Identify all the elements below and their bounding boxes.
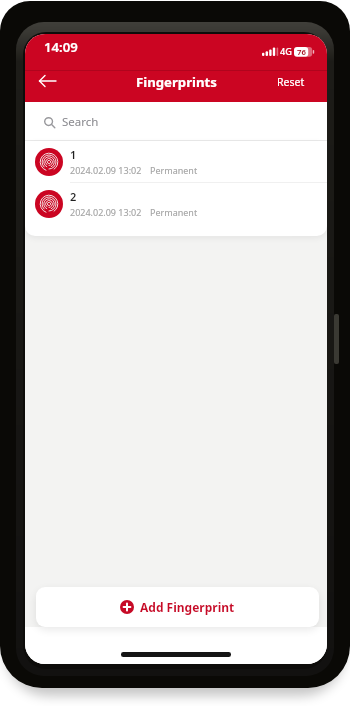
button[interactable] [38, 74, 58, 88]
staticText: Fingerprints [136, 73, 217, 91]
button[interactable]: 2 [25, 183, 327, 224]
button[interactable]: Search [25, 102, 327, 141]
staticText: 2 [70, 189, 77, 204]
button[interactable]: Reset [277, 75, 305, 89]
staticText: 2024.02.09 13:02 [70, 206, 142, 218]
staticText: 76 [297, 47, 306, 57]
staticText: 4G [280, 45, 292, 58]
button[interactable]: Add Fingerprint [36, 587, 319, 627]
staticText: 14:09 [44, 38, 78, 56]
staticText: 2024.02.09 13:02 [70, 164, 142, 176]
staticText: Permanent [150, 206, 198, 218]
staticText: Search [62, 114, 99, 130]
staticText: Permanent [150, 164, 198, 176]
staticText: Add Fingerprint [140, 599, 235, 615]
staticText: Reset [277, 75, 305, 89]
staticText: 1 [70, 147, 77, 162]
button[interactable]: 1 [25, 141, 327, 182]
